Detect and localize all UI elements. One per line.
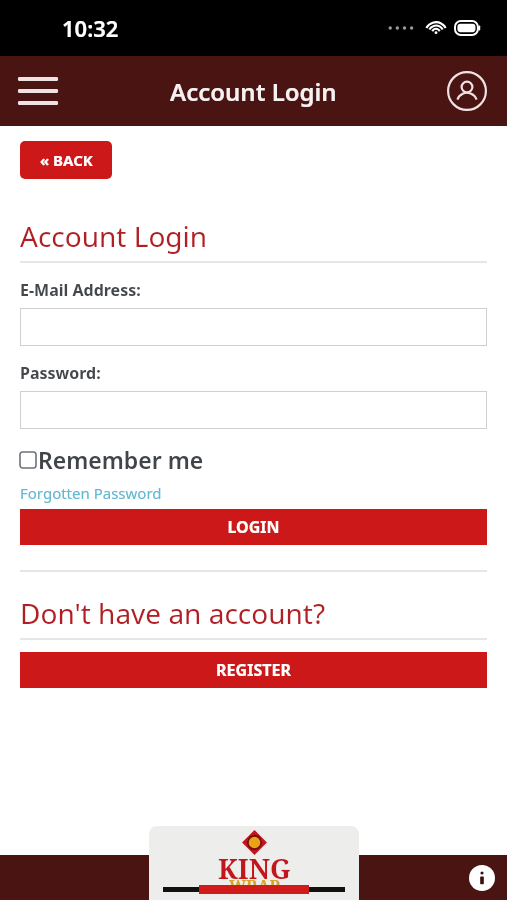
staticText: Remember me (38, 444, 204, 475)
button[interactable]: Ad information (469, 865, 495, 891)
staticText: KING (218, 850, 291, 887)
staticText: WRAP (229, 875, 280, 897)
staticText: 10:32 (62, 13, 119, 43)
button[interactable] (20, 308, 487, 346)
staticText: « BACK (40, 150, 93, 170)
button[interactable] (20, 391, 487, 429)
staticText: E-Mail Address: (20, 279, 141, 301)
button[interactable]: Remember me (20, 444, 204, 475)
staticText: Account Login (170, 75, 337, 108)
staticText: Don't have an account? (20, 594, 326, 632)
button[interactable]: Open navigation menu (10, 63, 66, 119)
button[interactable]: « BACK (20, 141, 112, 179)
button[interactable]: REGISTER (20, 652, 487, 688)
staticText: REGISTER (216, 659, 291, 681)
button[interactable]: Account (441, 65, 493, 117)
staticText: Password: (20, 362, 101, 384)
button[interactable]: Forgotten Password (20, 483, 162, 503)
button[interactable]: LOGIN (20, 509, 487, 545)
staticText: Forgotten Password (20, 483, 162, 503)
staticText: Account Login (20, 217, 208, 255)
button[interactable]: King Wrap advertisement (149, 826, 359, 900)
staticText: LOGIN (227, 516, 280, 538)
